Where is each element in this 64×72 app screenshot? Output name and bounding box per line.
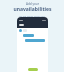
button[interactable] [28, 68, 38, 71]
staticText: So we never book you [19, 14, 45, 17]
staticText: unavailabilities [13, 6, 52, 13]
staticText: Add your [26, 2, 39, 6]
